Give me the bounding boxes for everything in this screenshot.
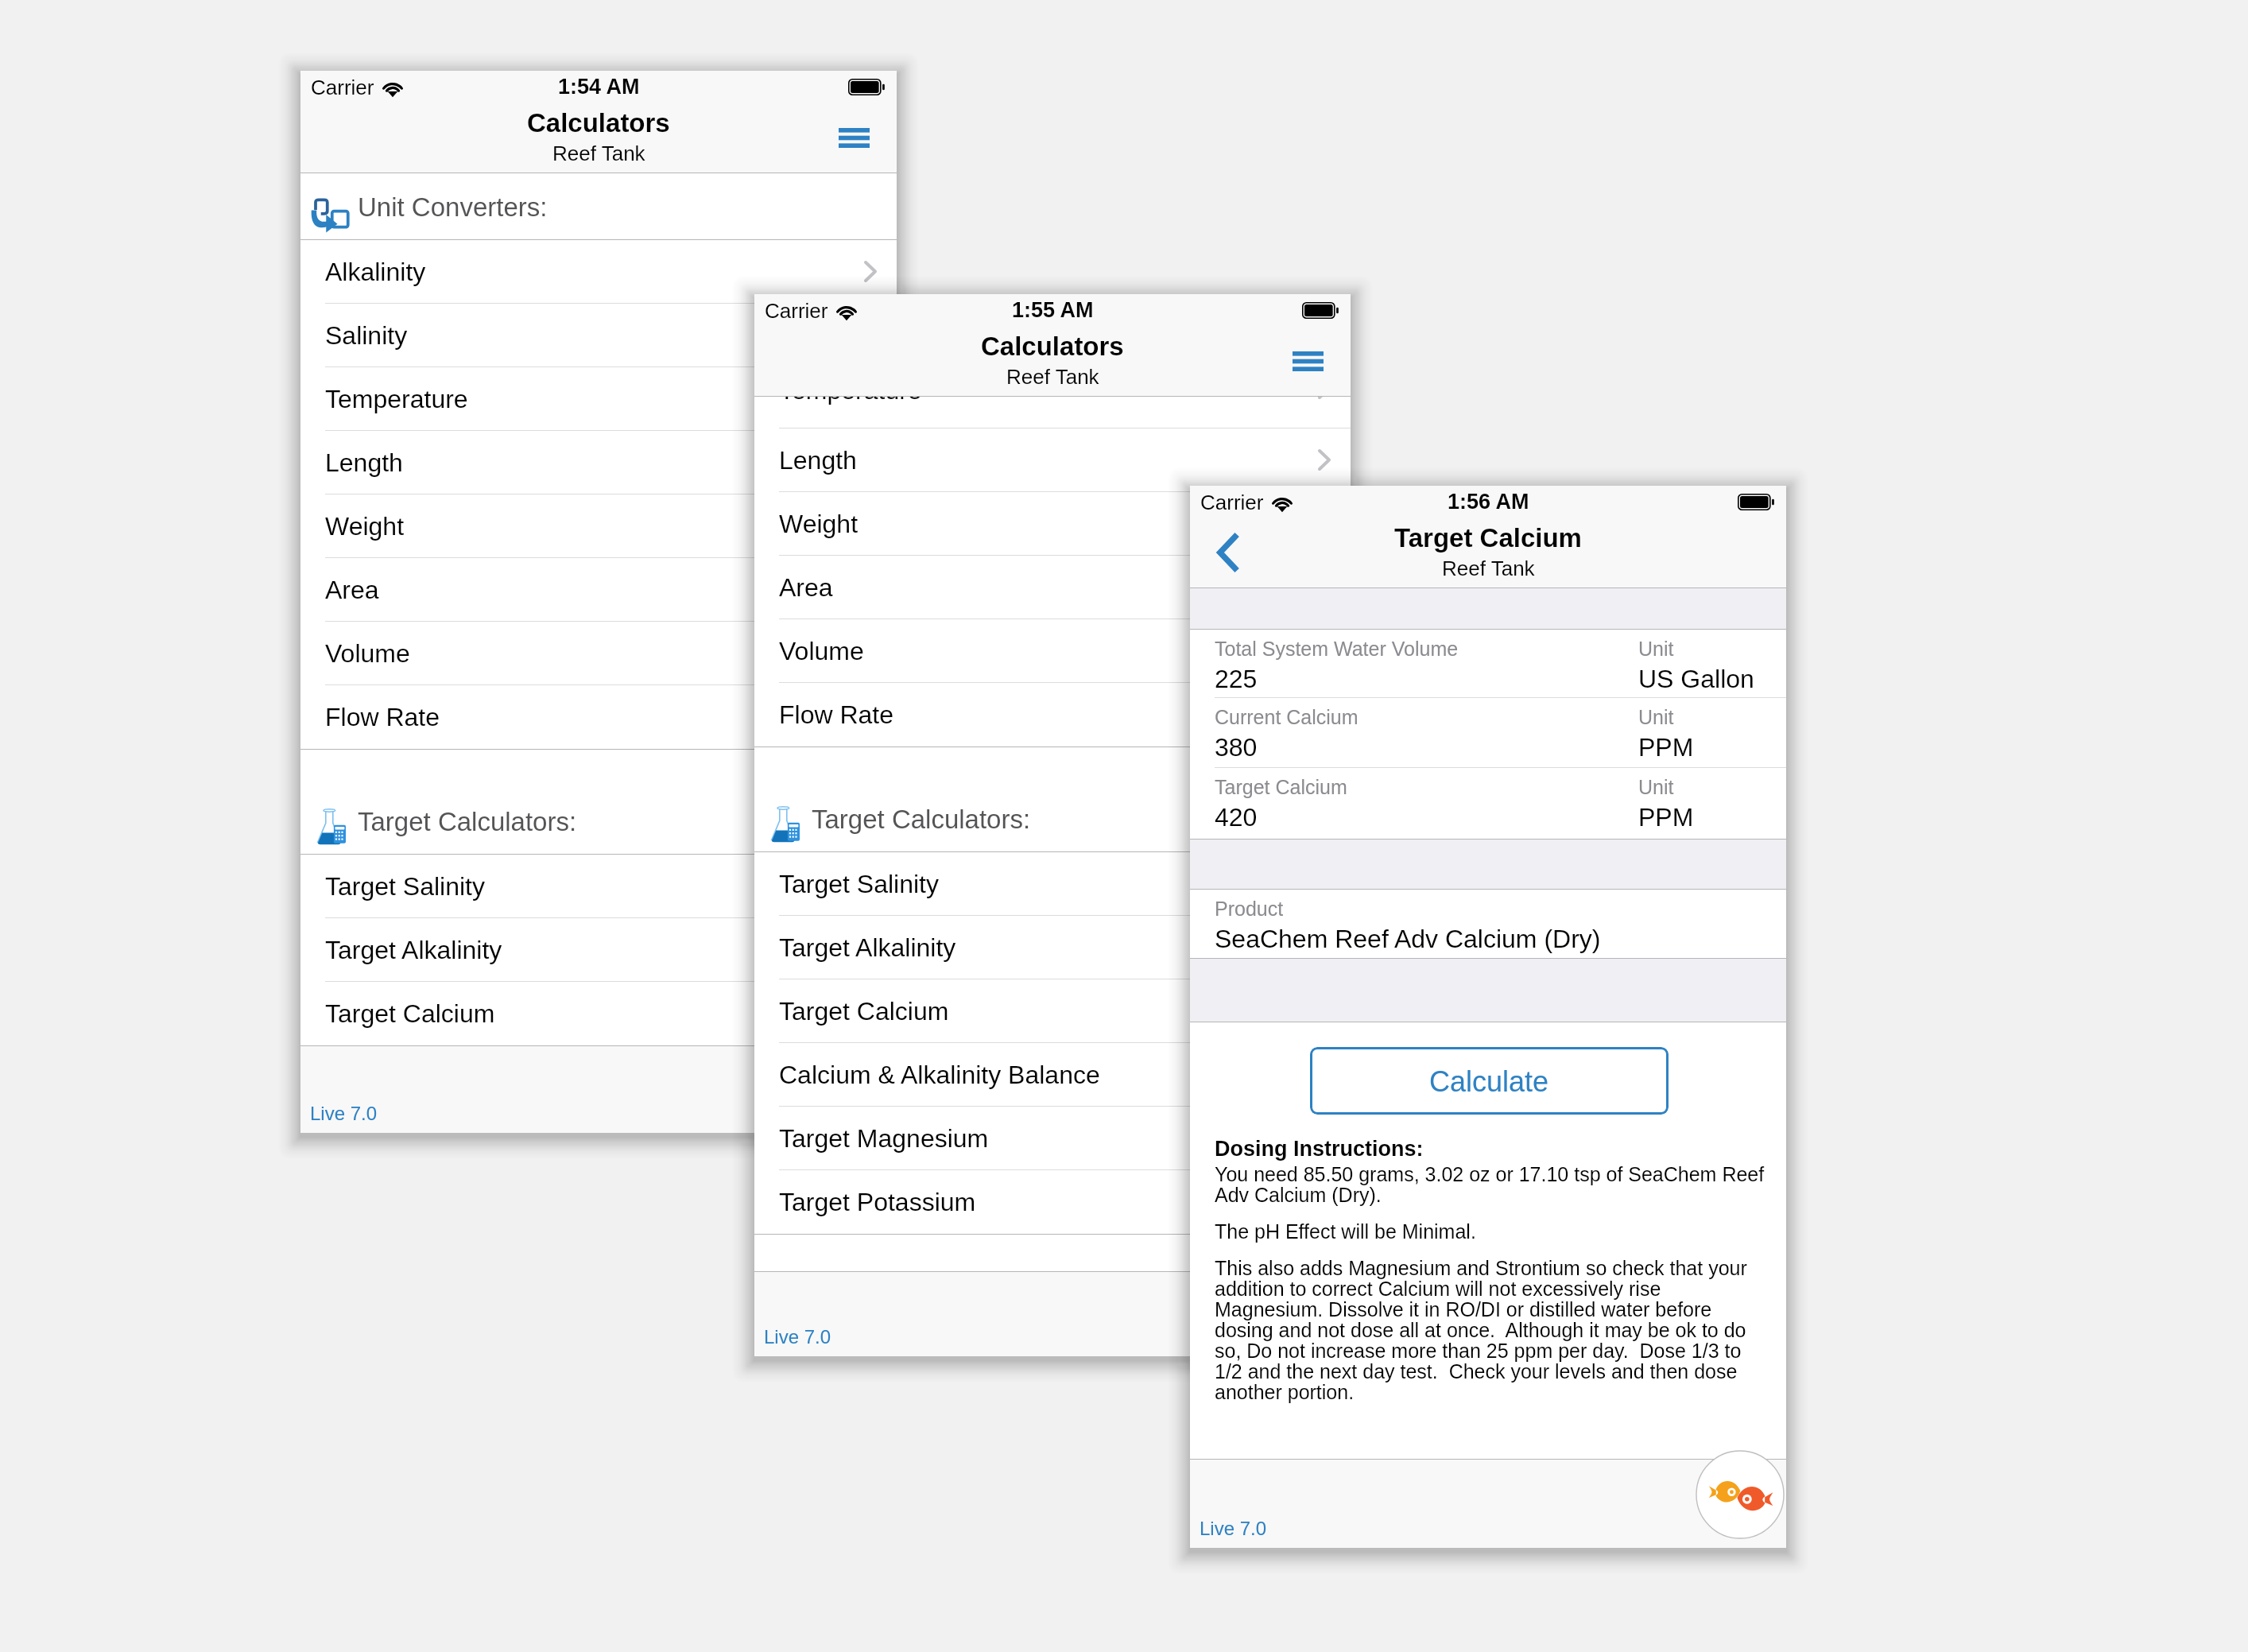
button[interactable]: Target Magnesium [754, 1107, 1351, 1169]
staticText: 380 [1215, 733, 1258, 762]
button[interactable]: Target Salinity [300, 855, 897, 917]
button[interactable]: Menu [1279, 332, 1336, 390]
staticText: Calculators [981, 332, 1124, 361]
button[interactable]: Target Calcium [754, 979, 1351, 1042]
button[interactable]: Back [1199, 524, 1256, 581]
staticText: Dosing Instructions: [1215, 1137, 1424, 1161]
staticText: 225 [1215, 665, 1258, 693]
button[interactable]: Flow Rate [300, 685, 897, 749]
staticText: Current Calcium [1215, 706, 1358, 728]
staticText: Temperature [325, 385, 468, 413]
button[interactable]: Volume [300, 622, 897, 684]
staticText: Target Alkalinity [325, 936, 502, 964]
staticText: 420 [1215, 803, 1258, 832]
staticText: Unit [1638, 706, 1674, 728]
staticText: Volume [325, 639, 410, 668]
staticText: Unit [1638, 776, 1674, 798]
button[interactable]: Temperature [754, 397, 1351, 428]
staticText: 1:56 AM [1448, 490, 1529, 514]
button[interactable]: Calcium & Alkalinity Balance [754, 1043, 1351, 1106]
button[interactable]: Target Salinity [754, 852, 1351, 915]
staticText: Target Alkalinity [779, 933, 956, 962]
staticText: Reef Tank [1442, 556, 1535, 580]
staticText: Area [325, 576, 379, 604]
button[interactable]: Length [300, 431, 897, 494]
button[interactable]: Target Calcium [300, 982, 897, 1045]
staticText: Target Calculators: [358, 807, 577, 836]
staticText: The pH Effect will be Minimal. [1215, 1222, 1476, 1243]
staticText: Product [1215, 898, 1284, 920]
staticText: Target Salinity [779, 870, 939, 898]
staticText: Carrier [311, 76, 374, 99]
staticText: PPM [1638, 803, 1694, 832]
staticText: Carrier [1200, 491, 1264, 514]
button[interactable]: Weight [300, 494, 897, 557]
staticText: Area [779, 573, 833, 602]
staticText: Target Calcium [779, 997, 949, 1026]
button[interactable]: Area [300, 558, 897, 621]
staticText: PPM [1638, 733, 1694, 762]
staticText: Target Calcium [325, 999, 495, 1028]
staticText: Target Calcium [1215, 776, 1347, 798]
button[interactable]: Alkalinity [300, 240, 897, 303]
staticText: Target Salinity [325, 872, 485, 901]
staticText: Weight [325, 512, 405, 541]
staticText: Unit Converters: [358, 192, 548, 222]
staticText: US Gallon [1638, 665, 1754, 693]
staticText: Live 7.0 [764, 1326, 831, 1348]
staticText: Target Calcium [1394, 523, 1582, 553]
button[interactable]: Flow Rate [754, 683, 1351, 747]
staticText: Target Calculators: [812, 805, 1031, 834]
staticText: Temperature [779, 397, 922, 405]
staticText: Target Potassium [779, 1188, 976, 1216]
button[interactable]: Length [754, 429, 1351, 491]
staticText: Unit [1638, 638, 1674, 660]
staticText: Reef Tank [1006, 365, 1099, 388]
button[interactable]: Weight [754, 492, 1351, 555]
staticText: Alkalinity [325, 258, 426, 286]
staticText: Calcium & Alkalinity Balance [779, 1061, 1100, 1089]
button[interactable]: Temperature [300, 367, 897, 430]
staticText: Carrier [765, 299, 828, 322]
button[interactable]: Target Alkalinity [300, 918, 897, 981]
staticText: Length [779, 446, 857, 475]
button[interactable]: Area [754, 556, 1351, 619]
staticText: SeaChem Reef Adv Calcium (Dry) [1215, 925, 1601, 953]
staticText: This also adds Magnesium and Strontium s… [1215, 1258, 1767, 1403]
button[interactable]: Volume [754, 619, 1351, 682]
staticText: Salinity [325, 321, 408, 350]
staticText: 1:55 AM [1012, 298, 1094, 322]
staticText: You need 85.50 grams, 3.02 oz or 17.10 t… [1215, 1165, 1767, 1206]
staticText: Flow Rate [779, 700, 894, 729]
staticText: Length [325, 448, 403, 477]
staticText: Flow Rate [325, 703, 440, 731]
button[interactable]: Target Potassium [754, 1170, 1351, 1234]
staticText: Total System Water Volume [1215, 638, 1459, 660]
staticText: Calculators [527, 108, 670, 138]
button[interactable]: Target Alkalinity [754, 916, 1351, 979]
button[interactable]: Menu [825, 109, 882, 166]
staticText: Weight [779, 510, 859, 538]
staticText: Live 7.0 [310, 1103, 378, 1124]
staticText: Reef Tank [552, 142, 645, 165]
staticText: Target Magnesium [779, 1124, 989, 1153]
button[interactable]: Calculate [1310, 1047, 1669, 1115]
staticText: Calculate [1429, 1065, 1549, 1097]
staticText: Live 7.0 [1200, 1518, 1267, 1539]
staticText: Volume [779, 637, 864, 665]
staticText: 1:54 AM [558, 75, 640, 99]
button[interactable]: Salinity [300, 304, 897, 366]
